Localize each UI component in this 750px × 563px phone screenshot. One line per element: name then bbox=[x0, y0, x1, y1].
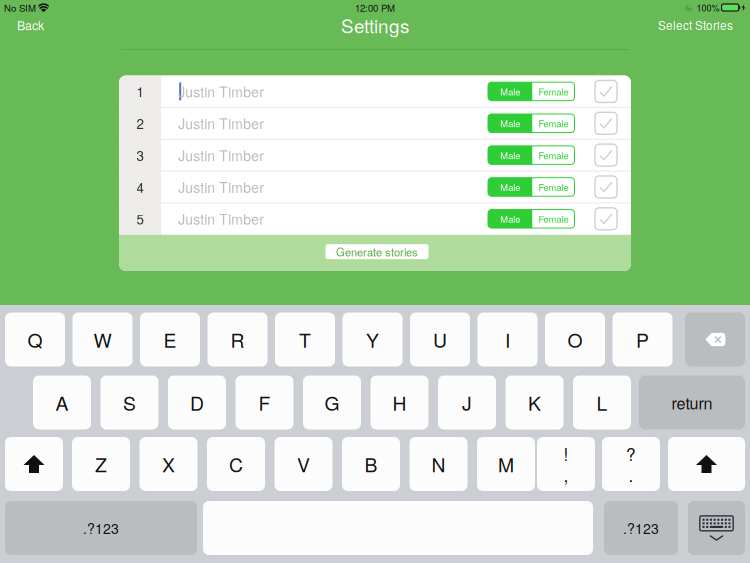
button[interactable]: Shift bbox=[5, 437, 63, 491]
staticText: Select Stories bbox=[658, 17, 733, 33]
staticText: H bbox=[392, 389, 406, 416]
button[interactable]: X bbox=[139, 437, 197, 491]
button[interactable]: N bbox=[409, 437, 467, 491]
button[interactable]: J bbox=[438, 375, 496, 429]
staticText: , bbox=[563, 462, 568, 487]
button[interactable]: I bbox=[477, 312, 537, 366]
staticText: .?123 bbox=[623, 518, 659, 538]
staticText: Q bbox=[27, 326, 42, 353]
staticText: Male bbox=[500, 148, 520, 162]
button[interactable]: Male bbox=[488, 114, 532, 132]
staticText: J bbox=[462, 389, 472, 416]
staticText: U bbox=[433, 326, 447, 353]
button[interactable]: Female bbox=[532, 210, 574, 228]
button[interactable]: Female bbox=[532, 146, 574, 164]
staticText: Female bbox=[538, 85, 568, 98]
button[interactable]: Q bbox=[5, 312, 65, 366]
button[interactable]: E bbox=[140, 312, 200, 366]
staticText: . bbox=[628, 462, 633, 487]
staticText: ? bbox=[626, 441, 636, 466]
staticText: X bbox=[162, 450, 175, 478]
button[interactable]: Female bbox=[532, 178, 574, 196]
button[interactable]: Select row bbox=[595, 208, 617, 230]
staticText: K bbox=[528, 389, 541, 416]
button[interactable]: Select row bbox=[595, 80, 617, 102]
button[interactable]: Select Stories bbox=[650, 11, 741, 39]
staticText: Female bbox=[538, 148, 568, 162]
button[interactable]: Generate stories bbox=[323, 245, 426, 260]
button[interactable]: S bbox=[100, 375, 158, 429]
staticText: A bbox=[55, 389, 68, 416]
staticText: V bbox=[297, 450, 310, 478]
staticText: D bbox=[190, 389, 204, 416]
staticText: I bbox=[505, 326, 510, 353]
staticText: return bbox=[671, 391, 712, 414]
button[interactable]: Select row bbox=[595, 112, 617, 134]
button[interactable]: Female bbox=[532, 114, 574, 132]
button[interactable]: G bbox=[303, 375, 361, 429]
button[interactable]: T bbox=[275, 312, 335, 366]
button[interactable]: Z bbox=[72, 437, 130, 491]
button[interactable]: B bbox=[342, 437, 400, 491]
button[interactable]: Male bbox=[488, 146, 532, 164]
button[interactable]: K bbox=[505, 375, 563, 429]
staticText: Justin Timber bbox=[178, 81, 264, 101]
staticText: Justin Timber bbox=[178, 177, 264, 197]
staticText: 12:00 PM bbox=[355, 1, 395, 14]
button[interactable]: Y bbox=[342, 312, 402, 366]
staticText: N bbox=[431, 450, 445, 478]
staticText: Female bbox=[538, 212, 568, 225]
button[interactable]: .?123 bbox=[604, 501, 678, 555]
button[interactable]: H bbox=[370, 375, 428, 429]
staticText: W bbox=[93, 326, 111, 353]
staticText: Justin Timber bbox=[178, 145, 264, 165]
button[interactable]: .?123 bbox=[5, 501, 197, 555]
staticText: ! bbox=[563, 441, 568, 466]
staticText: .?123 bbox=[83, 518, 119, 538]
staticText: Justin Timber bbox=[178, 113, 264, 133]
staticText: Back bbox=[17, 16, 44, 34]
button[interactable]: U bbox=[410, 312, 470, 366]
staticText: F bbox=[258, 389, 270, 416]
staticText: 3 bbox=[136, 146, 143, 165]
button[interactable]: M bbox=[477, 437, 535, 491]
button[interactable]: C bbox=[207, 437, 265, 491]
button[interactable]: Shift bbox=[668, 437, 745, 491]
button[interactable]: Hide Keyboard bbox=[688, 501, 745, 555]
button[interactable]: ! bbox=[537, 437, 595, 491]
button[interactable]: R bbox=[207, 312, 267, 366]
staticText: Male bbox=[500, 180, 520, 194]
button[interactable]: Female bbox=[532, 82, 574, 101]
button[interactable]: A bbox=[33, 375, 91, 429]
staticText: Y bbox=[366, 326, 379, 353]
staticText: B bbox=[364, 450, 377, 478]
button[interactable]: P bbox=[612, 312, 672, 366]
button[interactable]: Male bbox=[488, 82, 532, 101]
button[interactable]: Male bbox=[488, 178, 532, 196]
staticText: Z bbox=[95, 450, 107, 478]
button[interactable]: V bbox=[274, 437, 332, 491]
button[interactable]: ? bbox=[602, 437, 660, 491]
button[interactable]: D bbox=[168, 375, 226, 429]
button[interactable]: return bbox=[639, 375, 745, 429]
button[interactable]: Select row bbox=[595, 144, 617, 166]
staticText: Male bbox=[500, 85, 520, 98]
staticText: Female bbox=[538, 180, 568, 194]
button[interactable]: L bbox=[573, 375, 631, 429]
staticText: Settings bbox=[341, 11, 409, 38]
staticText: R bbox=[230, 326, 244, 353]
button[interactable]: Delete bbox=[685, 312, 745, 366]
staticText: M bbox=[498, 450, 514, 478]
staticText: T bbox=[299, 326, 311, 353]
button[interactable]: Back bbox=[9, 10, 52, 40]
staticText: No SIM bbox=[4, 1, 36, 14]
staticText: Male bbox=[500, 117, 520, 130]
staticText: C bbox=[229, 450, 243, 478]
button[interactable]: O bbox=[545, 312, 605, 366]
button[interactable]: Select row bbox=[595, 176, 617, 198]
button[interactable]: W bbox=[72, 312, 132, 366]
button[interactable]: F bbox=[235, 375, 293, 429]
button[interactable]: Male bbox=[488, 210, 532, 228]
staticText: O bbox=[567, 326, 582, 353]
